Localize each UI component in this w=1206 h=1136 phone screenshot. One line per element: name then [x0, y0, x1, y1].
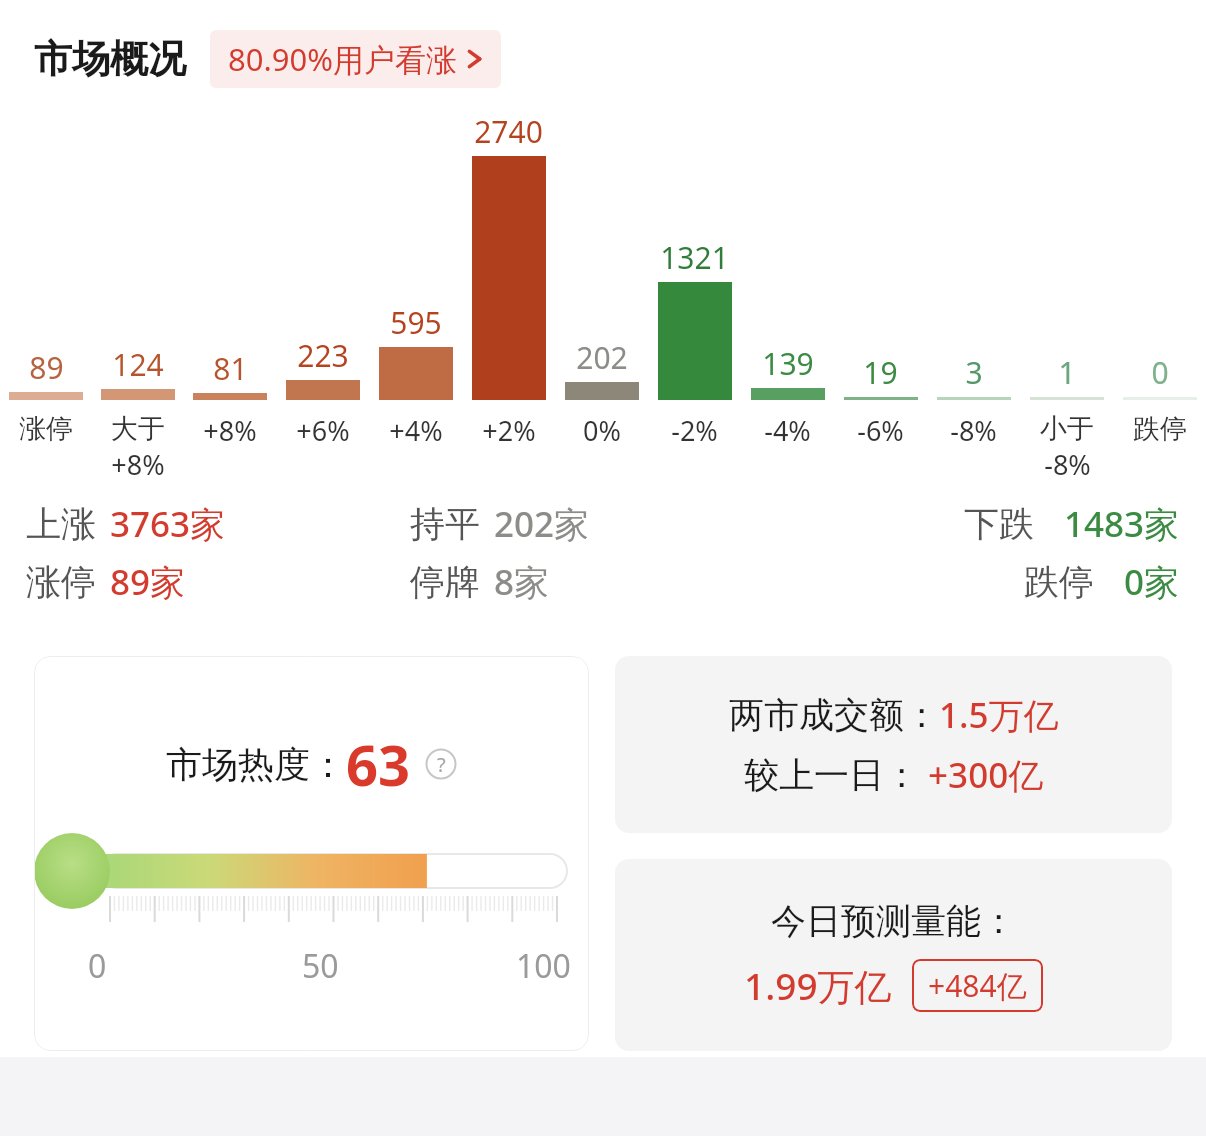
staticText: 0 — [1151, 352, 1169, 393]
staticText: 涨停 — [19, 412, 73, 446]
staticText: 市场概况 — [34, 35, 186, 83]
staticText: 8家 — [494, 558, 550, 606]
staticText: 停牌 — [410, 560, 480, 604]
staticText: -2% — [671, 412, 718, 449]
staticText: +8% — [111, 446, 165, 480]
staticText: +484亿 — [928, 965, 1027, 1006]
staticText: 上涨 — [26, 502, 96, 546]
staticText: 202 — [576, 337, 628, 378]
staticText: 124 — [112, 344, 164, 385]
staticText: 1.99万亿 — [744, 960, 892, 1011]
staticText: +300亿 — [919, 751, 1044, 799]
staticText: +2% — [482, 412, 536, 449]
staticText: 100 — [516, 944, 571, 988]
staticText: 595 — [390, 302, 442, 343]
staticText: +8% — [203, 412, 257, 449]
staticText: ? — [437, 751, 446, 778]
staticText: 139 — [762, 343, 814, 384]
staticText: +6% — [296, 412, 350, 449]
staticText: 大于 — [111, 412, 165, 446]
staticText: -8% — [1044, 446, 1091, 480]
staticText: 持平 — [410, 502, 480, 546]
staticText: 19 — [863, 352, 898, 393]
staticText: 今日预测量能： — [771, 899, 1016, 943]
button[interactable]: 80.90%用户看涨 — [210, 30, 501, 88]
staticText: 1 — [1058, 352, 1076, 393]
staticText: 50 — [302, 944, 339, 988]
staticText: 89 — [29, 347, 64, 388]
staticText: 2740 — [474, 111, 543, 152]
staticText: 0 — [88, 944, 107, 988]
staticText: 0% — [583, 412, 621, 449]
button[interactable]: 两市成交额： — [615, 656, 1172, 833]
staticText: 市场热度： — [166, 742, 346, 787]
button[interactable]: 帮助 — [425, 748, 457, 780]
staticText: 223 — [297, 335, 349, 376]
staticText: 3763家 — [110, 500, 226, 548]
staticText: 涨停 — [26, 560, 96, 604]
staticText: -8% — [950, 412, 997, 449]
staticText: 3 — [965, 352, 983, 393]
staticText: 80.90%用户看涨 — [228, 38, 457, 80]
staticText: 较上一日： — [744, 753, 919, 797]
staticText: -6% — [857, 412, 904, 449]
staticText: 1.5万亿 — [939, 691, 1059, 739]
staticText: 202家 — [494, 500, 590, 548]
staticText: 跌停 — [1024, 560, 1094, 604]
button[interactable]: 市场热度： — [34, 656, 589, 1051]
button[interactable]: 今日预测量能： — [615, 859, 1172, 1051]
staticText: 小于 — [1040, 412, 1094, 446]
staticText: 两市成交额： — [729, 693, 939, 737]
staticText: 0家 — [1124, 558, 1180, 606]
staticText: 1321 — [660, 237, 729, 278]
staticText: 89家 — [110, 558, 186, 606]
staticText: 63 — [346, 726, 411, 802]
staticText: 跌停 — [1133, 412, 1187, 446]
staticText: 81 — [213, 348, 248, 389]
staticText: 下跌 — [964, 502, 1034, 546]
staticText: +4% — [389, 412, 443, 449]
staticText: -4% — [764, 412, 811, 449]
staticText: 1483家 — [1064, 500, 1180, 548]
